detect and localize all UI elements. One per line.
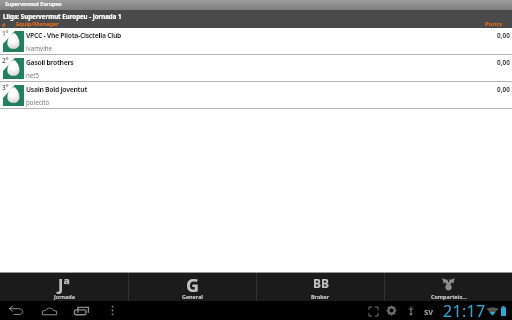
button[interactable]: Comparteix xyxy=(385,273,512,301)
staticText: sv xyxy=(424,306,434,318)
button[interactable]: More options xyxy=(99,301,125,320)
staticText: BB xyxy=(313,275,329,291)
staticText: 3° xyxy=(2,83,9,92)
staticText: Equip/Manager xyxy=(16,20,59,27)
staticText: ivamvihe xyxy=(26,44,53,52)
staticText: 0,00 xyxy=(497,85,510,94)
button[interactable]: 2° xyxy=(0,55,512,82)
staticText: 0,00 xyxy=(497,58,510,67)
staticText: net5 xyxy=(26,71,40,79)
staticText: polecito xyxy=(26,98,50,106)
staticText: 0,00 xyxy=(497,31,510,40)
staticText: Punts xyxy=(485,20,503,27)
staticText: Jornada xyxy=(54,293,75,300)
button[interactable]: BB xyxy=(257,273,384,301)
staticText: General xyxy=(182,293,203,300)
staticText: G xyxy=(186,273,200,298)
staticText: # xyxy=(2,21,6,28)
button[interactable]: Back xyxy=(4,301,30,320)
staticText: Supervermut Europeo xyxy=(5,0,62,7)
button[interactable]: Recents xyxy=(68,301,94,320)
staticText: Comparteix... xyxy=(431,293,467,300)
staticText: Lliga: Supervermut Europeu - Jornada 1 xyxy=(3,12,122,20)
staticText: 21:17 xyxy=(443,300,486,319)
button[interactable]: G xyxy=(129,273,256,301)
staticText: Broker xyxy=(311,293,330,300)
staticText: Usain Bold Joventut xyxy=(26,85,88,94)
staticText: 1° xyxy=(2,29,9,38)
button[interactable]: 3° xyxy=(0,82,512,109)
button[interactable]: 1° xyxy=(0,28,512,55)
staticText: Jª xyxy=(58,273,70,295)
button[interactable]: Jª xyxy=(0,273,128,301)
staticText: VPCC - Vhe Pilota-Cisctella Club xyxy=(26,31,122,40)
button[interactable]: Home xyxy=(36,301,62,320)
staticText: 2° xyxy=(2,56,9,65)
staticText: Gasoil brothers xyxy=(26,58,74,67)
